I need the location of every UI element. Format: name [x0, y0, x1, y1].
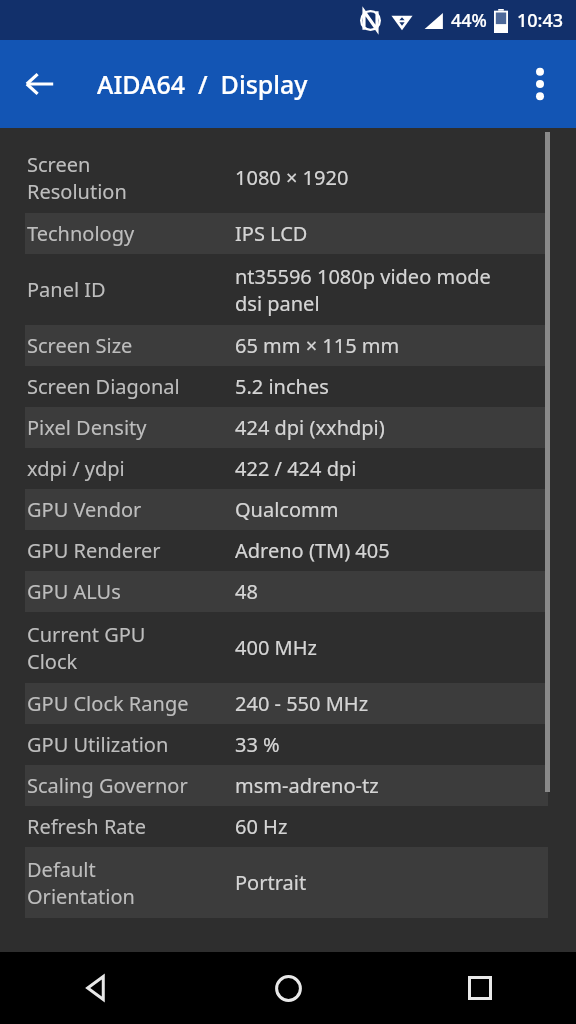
staticText: Default Orientation: [27, 856, 235, 910]
staticText: GPU Utilization: [27, 731, 235, 758]
button[interactable]: Panel ID: [25, 254, 548, 325]
button[interactable]: GPU Utilization: [25, 724, 548, 765]
staticText: IPS LCD: [235, 220, 548, 247]
staticText: 48: [235, 578, 548, 605]
button[interactable]: Pixel Density: [25, 407, 548, 448]
staticText: Current GPU Clock: [27, 621, 235, 675]
button[interactable]: GPU ALUs: [25, 571, 548, 612]
button[interactable]: xdpi / ydpi: [25, 448, 548, 489]
button[interactable]: More options: [514, 58, 566, 110]
button[interactable]: Refresh Rate: [25, 806, 548, 847]
staticText: 422 / 424 dpi: [235, 455, 548, 482]
button[interactable]: Back: [14, 58, 66, 110]
staticText: 33 %: [235, 731, 548, 758]
staticText: 1080 × 1920: [235, 164, 548, 191]
button[interactable]: Home: [192, 952, 384, 1024]
button[interactable]: Screen Size: [25, 325, 548, 366]
staticText: Refresh Rate: [27, 813, 235, 840]
staticText: msm-adreno-tz: [235, 772, 548, 799]
button[interactable]: Recents: [384, 952, 576, 1024]
button[interactable]: Scaling Governor: [25, 765, 548, 806]
staticText: Adreno (TM) 405: [235, 537, 548, 564]
staticText: Panel ID: [27, 276, 235, 303]
button[interactable]: Back: [0, 952, 192, 1024]
staticText: Qualcomm: [235, 496, 548, 523]
staticText: 65 mm × 115 mm: [235, 332, 548, 359]
staticText: GPU Renderer: [27, 537, 235, 564]
staticText: AIDA64 / Display: [97, 67, 308, 101]
staticText: Screen Diagonal: [27, 373, 235, 400]
staticText: Screen Size: [27, 332, 235, 359]
staticText: 5.2 inches: [235, 373, 548, 400]
staticText: 240 - 550 MHz: [235, 690, 548, 717]
staticText: GPU Clock Range: [27, 690, 235, 717]
staticText: 60 Hz: [235, 813, 548, 840]
button[interactable]: GPU Renderer: [25, 530, 548, 571]
button[interactable]: GPU Vendor: [25, 489, 548, 530]
staticText: GPU Vendor: [27, 496, 235, 523]
staticText: 400 MHz: [235, 634, 548, 661]
button[interactable]: Default Orientation: [25, 847, 548, 918]
staticText: 424 dpi (xxhdpi): [235, 414, 548, 441]
staticText: Portrait: [235, 869, 548, 896]
staticText: Scaling Governor: [27, 772, 235, 799]
staticText: xdpi / ydpi: [27, 455, 235, 482]
staticText: GPU ALUs: [27, 578, 235, 605]
button[interactable]: Current GPU Clock: [25, 612, 548, 683]
button[interactable]: Screen Diagonal: [25, 366, 548, 407]
button[interactable]: GPU Clock Range: [25, 683, 548, 724]
staticText: nt35596 1080p video mode dsi panel: [235, 263, 548, 317]
button[interactable]: Screen Resolution: [25, 142, 548, 213]
staticText: Pixel Density: [27, 414, 235, 441]
staticText: Screen Resolution: [27, 151, 235, 205]
staticText: 10:43: [517, 8, 564, 33]
button[interactable]: Technology: [25, 213, 548, 254]
staticText: 44%: [451, 8, 487, 33]
staticText: Technology: [27, 220, 235, 247]
